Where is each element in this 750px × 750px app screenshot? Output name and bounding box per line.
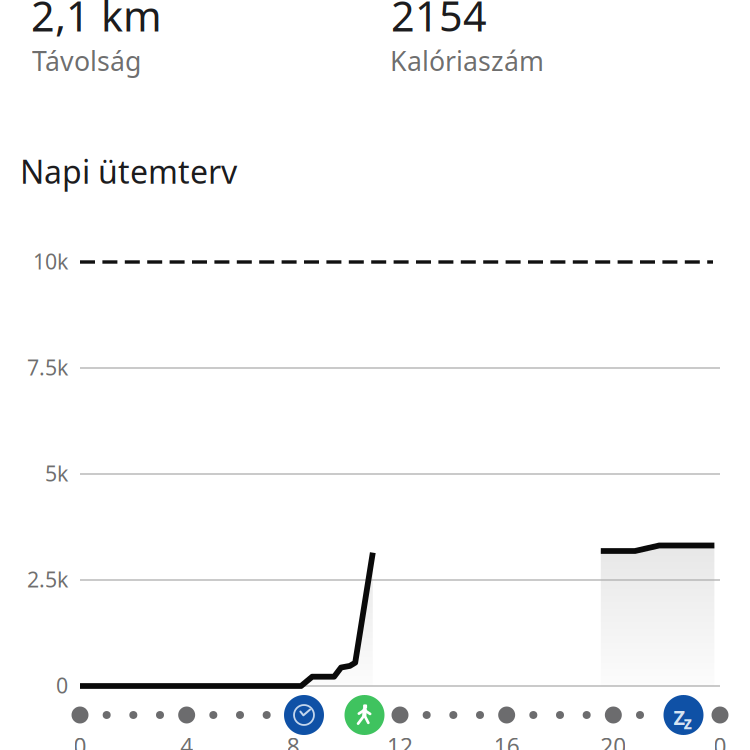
staticText: Kalóriaszám — [390, 43, 544, 78]
staticText: 2.5k — [27, 565, 68, 593]
staticText: 10k — [33, 247, 68, 275]
staticText: 5k — [45, 459, 68, 487]
button[interactable]: Walk at 10 — [344, 695, 384, 735]
staticText: 2,1 km — [31, 0, 162, 43]
staticText: 12 — [387, 731, 413, 750]
staticText: z — [683, 711, 692, 734]
staticText: Napi ütemterv — [20, 150, 237, 192]
staticText: 16 — [494, 731, 520, 750]
staticText: 4 — [180, 731, 193, 750]
staticText: 2154 — [391, 0, 487, 43]
staticText: 0 — [713, 731, 726, 750]
staticText: Távolság — [32, 43, 141, 78]
button[interactable]: Alarm at 8 — [284, 695, 324, 735]
staticText: 8 — [287, 731, 300, 750]
staticText: Z — [673, 704, 685, 731]
staticText: 0 — [73, 731, 86, 750]
staticText: 7.5k — [27, 353, 68, 381]
staticText: 20 — [600, 731, 626, 750]
button[interactable]: Sleep — [663, 695, 703, 735]
staticText: 0 — [56, 671, 68, 699]
